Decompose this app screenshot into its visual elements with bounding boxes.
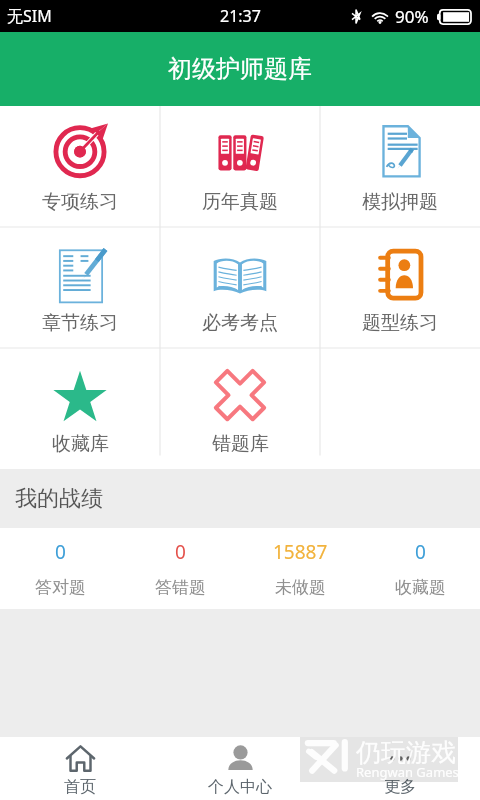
staticText: 0	[55, 539, 66, 565]
staticText: 无SIM	[7, 5, 52, 27]
button[interactable]: 错题库	[160, 348, 320, 469]
staticText: 更多	[384, 777, 416, 797]
staticText: 答对题	[35, 577, 86, 598]
button[interactable]: 0	[0, 528, 120, 609]
staticText: 仍玩游戏	[356, 737, 456, 768]
staticText: 收藏库	[52, 432, 109, 456]
staticText: 必考考点	[202, 311, 278, 335]
staticText: 答错题	[155, 577, 206, 598]
staticText: Rengwan Games	[356, 763, 459, 781]
button[interactable]: More	[320, 737, 480, 800]
button[interactable]: 专项练习	[0, 106, 160, 227]
button[interactable]: Profile	[160, 737, 320, 800]
staticText: 首页	[64, 777, 96, 797]
staticText: 我的战绩	[15, 485, 103, 513]
button[interactable]: 15887	[240, 528, 360, 609]
staticText: 个人中心	[208, 777, 272, 797]
staticText: 题型练习	[362, 311, 438, 335]
button[interactable]: 模拟押题	[320, 106, 480, 227]
staticText: 历年真题	[202, 190, 278, 214]
staticText: 错题库	[212, 432, 269, 456]
staticText: 章节练习	[42, 311, 118, 335]
staticText: 模拟押题	[362, 190, 438, 214]
button[interactable]: 题型练习	[320, 227, 480, 348]
staticText: 90%	[395, 5, 429, 28]
staticText: 0	[175, 539, 186, 565]
button[interactable]: 必考考点	[160, 227, 320, 348]
button[interactable]: Home	[0, 737, 160, 800]
button[interactable]: 历年真题	[160, 106, 320, 227]
button[interactable]: 0	[120, 528, 240, 609]
staticText: 21:37	[220, 5, 261, 27]
button[interactable]: 收藏库	[0, 348, 160, 469]
staticText: 未做题	[275, 577, 326, 598]
staticText: 0	[415, 539, 426, 565]
staticText: 收藏题	[395, 577, 446, 598]
staticText: 15887	[273, 539, 328, 565]
staticText: 专项练习	[42, 190, 118, 214]
staticText: 初级护师题库	[168, 54, 312, 84]
button[interactable]: 0	[360, 528, 480, 609]
button[interactable]: 章节练习	[0, 227, 160, 348]
